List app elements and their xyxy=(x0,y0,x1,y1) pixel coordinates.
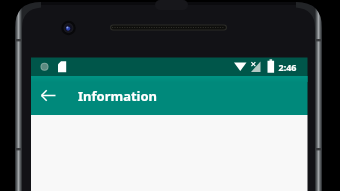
button[interactable]: Navigate up xyxy=(36,76,62,115)
